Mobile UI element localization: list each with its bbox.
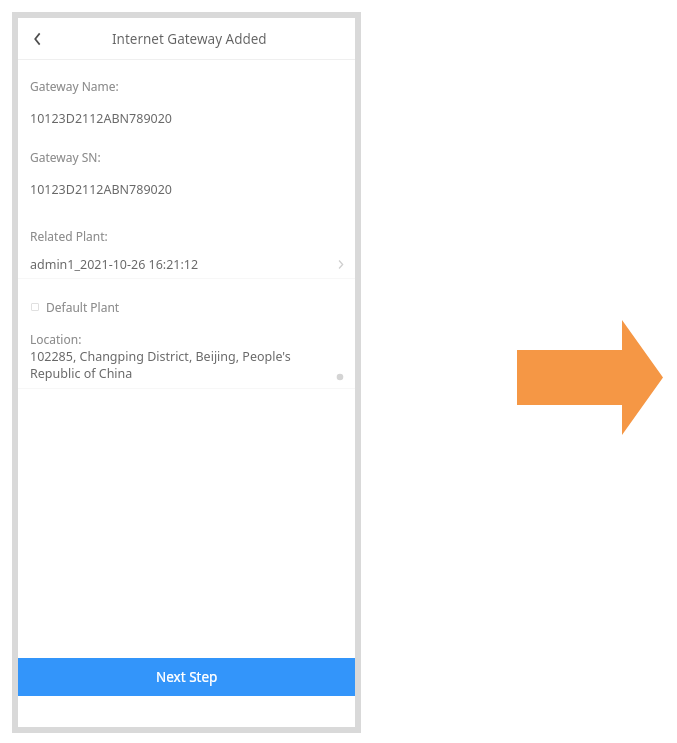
staticText: Gateway SN: (30, 149, 101, 165)
button[interactable]: Location: (18, 331, 355, 389)
staticText: 10123D2112ABN789020 (30, 110, 172, 127)
button[interactable]: Default Plant (31, 298, 120, 316)
staticText: Internet Gateway Added (112, 30, 267, 48)
staticText: 102285, Changping District, Beijing, Peo… (30, 348, 310, 382)
staticText: Location: (30, 331, 82, 347)
other: Next (0, 0, 677, 743)
staticText: Gateway Name: (30, 78, 119, 94)
button[interactable]: Next Step (18, 658, 355, 696)
staticText: Related Plant: (30, 228, 108, 244)
staticText: Default Plant (46, 299, 120, 315)
staticText: admin1_2021-10-26 16:21:12 (30, 256, 199, 273)
staticText: Next Step (156, 668, 218, 686)
staticText: 10123D2112ABN789020 (30, 181, 172, 198)
button[interactable]: Back (23, 24, 53, 54)
button[interactable]: admin1_2021-10-26 16:21:12 (18, 250, 355, 279)
